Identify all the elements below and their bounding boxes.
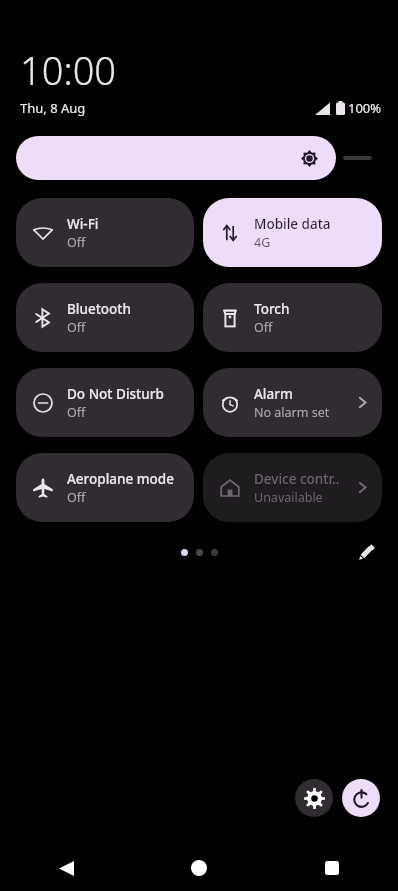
staticText: Do Not Disturb (67, 385, 164, 403)
button[interactable]: Power (342, 779, 380, 817)
button[interactable]: Mobile data (203, 198, 382, 267)
staticText: Device contr.. (254, 470, 340, 488)
staticText: Thu, 8 Aug (20, 99, 86, 117)
staticText: Off (67, 234, 86, 251)
button[interactable]: Alarm (203, 368, 382, 437)
button[interactable]: Do Not Disturb (16, 368, 194, 437)
button[interactable]: Recent apps (265, 845, 398, 891)
staticText: Wi-Fi (67, 215, 99, 233)
staticText: Alarm (254, 385, 293, 403)
button[interactable]: Torch (203, 283, 382, 352)
staticText: Unavailable (254, 489, 323, 506)
staticText: Off (254, 319, 273, 336)
staticText: 4G (254, 234, 271, 251)
staticText: Mobile data (254, 215, 331, 233)
button[interactable]: Bluetooth (16, 283, 194, 352)
staticText: 10:00 (20, 44, 117, 96)
button[interactable]: Aeroplane mode (16, 453, 194, 522)
staticText: Aeroplane mode (67, 470, 174, 488)
button[interactable]: Edit tiles (350, 536, 382, 568)
staticText: Off (67, 319, 86, 336)
staticText: 100% (348, 99, 382, 117)
staticText: Torch (254, 300, 290, 318)
staticText: Bluetooth (67, 300, 131, 318)
button[interactable]: Wi-Fi (16, 198, 194, 267)
button[interactable]: Brightness (16, 136, 382, 180)
staticText: No alarm set (254, 404, 330, 421)
button[interactable]: Back (0, 845, 132, 891)
staticText: Off (67, 404, 86, 421)
staticText: Off (67, 489, 86, 506)
button[interactable]: Home (132, 845, 265, 891)
button[interactable]: Settings (295, 779, 333, 817)
button[interactable]: Device contr.. (203, 453, 382, 522)
